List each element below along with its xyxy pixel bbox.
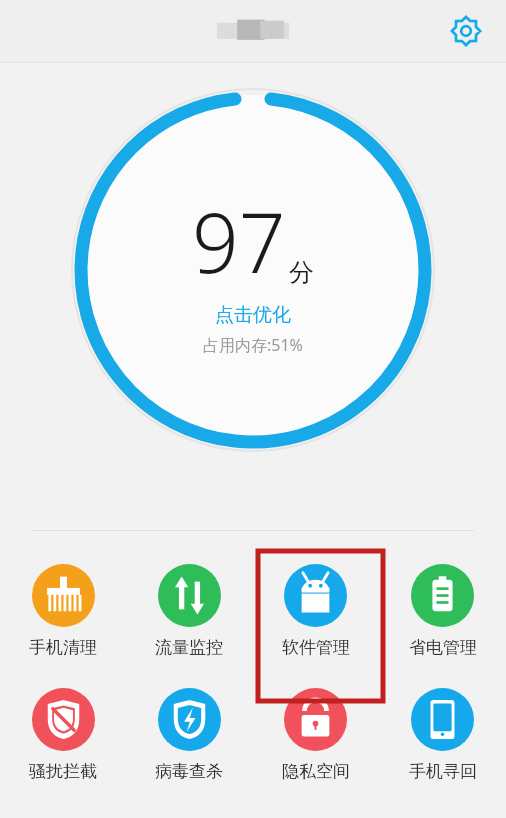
staticText: 病毒查杀 — [155, 761, 223, 782]
button[interactable]: 97 — [67, 84, 439, 456]
staticText: 手机清理 — [29, 637, 97, 658]
staticText: 占用内存:51% — [203, 334, 303, 356]
staticText: 手机寻回 — [409, 761, 477, 782]
staticText: 软件管理 — [282, 637, 350, 658]
button[interactable]: 骚扰拦截 — [0, 684, 126, 786]
staticText: 省电管理 — [409, 637, 477, 658]
staticText: 流量监控 — [155, 637, 223, 658]
button[interactable]: 手机清理 — [0, 560, 126, 662]
button[interactable]: 软件管理 — [252, 560, 379, 662]
button[interactable]: 流量监控 — [126, 560, 252, 662]
button[interactable]: 手机寻回 — [379, 684, 506, 786]
button[interactable]: 病毒查杀 — [126, 684, 252, 786]
staticText: 点击优化 — [215, 303, 291, 327]
button[interactable]: Settings — [444, 9, 488, 53]
staticText: 隐私空间 — [282, 761, 350, 782]
staticText: 分 — [289, 257, 314, 288]
button[interactable]: 隐私空间 — [252, 684, 379, 786]
button[interactable]: 省电管理 — [379, 560, 506, 662]
staticText: 骚扰拦截 — [29, 761, 97, 782]
staticText: 97 — [192, 185, 286, 297]
